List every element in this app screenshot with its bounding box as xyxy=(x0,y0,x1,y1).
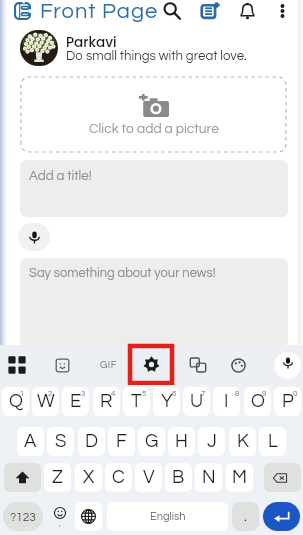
staticText: H xyxy=(175,432,188,451)
button[interactable]: Voice typing xyxy=(274,352,301,379)
button[interactable]: F xyxy=(108,427,135,456)
button[interactable]: E xyxy=(62,387,89,416)
button[interactable]: A xyxy=(17,427,44,456)
button[interactable]: Profile xyxy=(20,30,58,66)
staticText: F xyxy=(116,432,127,451)
staticText: A xyxy=(24,432,37,451)
staticText: 5 xyxy=(142,389,147,397)
button[interactable]: T xyxy=(123,387,150,416)
staticText: Y xyxy=(161,392,173,411)
staticText: 1 xyxy=(20,389,25,397)
staticText: Do small things with great love. xyxy=(66,49,247,63)
button[interactable]: Backspace xyxy=(264,463,301,492)
staticText: Parkavi xyxy=(66,33,117,52)
button[interactable]: Voice input xyxy=(18,223,50,251)
staticText: 0 xyxy=(293,389,298,397)
staticText: Q xyxy=(9,392,23,411)
button[interactable]: O xyxy=(244,387,271,416)
button[interactable]: Shift xyxy=(4,463,41,492)
button[interactable]: K xyxy=(229,427,256,456)
staticText: B xyxy=(172,468,185,487)
staticText: , xyxy=(59,519,61,527)
button[interactable]: More options xyxy=(273,0,292,24)
staticText: Add a title! xyxy=(29,169,92,183)
staticText: E xyxy=(70,392,82,411)
button[interactable]: New post xyxy=(197,0,224,24)
staticText: T xyxy=(131,392,142,411)
staticText: C xyxy=(112,468,125,487)
staticText: U xyxy=(190,392,204,411)
staticText: N xyxy=(202,468,216,487)
button[interactable]: Change language xyxy=(75,502,102,531)
button[interactable]: R xyxy=(93,387,120,416)
button[interactable]: ?123 xyxy=(3,502,43,531)
staticText: 3 xyxy=(81,389,86,397)
staticText: English xyxy=(150,511,186,522)
staticText: X xyxy=(83,468,95,487)
staticText: Click to add a picture xyxy=(89,122,219,136)
staticText: J xyxy=(207,432,217,451)
button[interactable]: Apps xyxy=(0,347,35,383)
staticText: ?123 xyxy=(10,511,36,523)
staticText: 7 xyxy=(201,389,206,397)
button[interactable]: Click to add a picture xyxy=(21,77,286,152)
staticText: 8 xyxy=(235,389,240,397)
staticText: 9 xyxy=(262,389,267,397)
staticText: 4 xyxy=(111,389,116,397)
button[interactable]: G xyxy=(138,427,165,456)
button[interactable]: V xyxy=(135,463,162,492)
button[interactable]: Y xyxy=(153,387,180,416)
button[interactable]: Say something about your news! xyxy=(20,258,288,347)
button[interactable]: Notifications xyxy=(236,0,259,24)
staticText: W xyxy=(37,392,55,411)
button[interactable]: M xyxy=(226,463,253,492)
staticText: Z xyxy=(52,468,63,487)
button[interactable]: English xyxy=(107,502,228,531)
button[interactable]: I xyxy=(213,387,240,416)
button[interactable]: B xyxy=(165,463,192,492)
staticText: S xyxy=(55,432,67,451)
button[interactable]: Q xyxy=(2,387,29,416)
staticText: R xyxy=(100,392,113,411)
button[interactable]: P xyxy=(274,387,301,416)
staticText: 6 xyxy=(172,389,177,397)
button[interactable]: N xyxy=(195,463,222,492)
button[interactable]: S xyxy=(47,427,74,456)
staticText: I xyxy=(224,392,229,411)
staticText: . xyxy=(244,510,247,524)
staticText: 2 xyxy=(48,389,53,397)
button[interactable]: Emoji xyxy=(48,502,71,531)
button[interactable]: Z xyxy=(44,463,71,492)
button[interactable]: Translate xyxy=(180,347,216,383)
staticText: M xyxy=(232,468,247,487)
button[interactable]: D xyxy=(78,427,105,456)
button[interactable]: . xyxy=(232,502,259,531)
staticText: K xyxy=(237,432,249,451)
button[interactable]: Search xyxy=(159,0,185,24)
button[interactable]: GIF xyxy=(97,356,120,374)
staticText: G xyxy=(145,432,159,451)
button[interactable]: W xyxy=(32,387,59,416)
button[interactable]: Add a title! xyxy=(20,160,288,217)
button[interactable]: X xyxy=(75,463,102,492)
staticText: Say something about your news! xyxy=(29,266,216,279)
button[interactable]: U xyxy=(183,387,210,416)
button[interactable]: Enter xyxy=(263,502,300,531)
button[interactable]: Stickers xyxy=(44,347,80,383)
button[interactable]: Themes xyxy=(221,347,257,383)
staticText: P xyxy=(282,392,294,411)
button[interactable]: L xyxy=(259,427,286,456)
staticText: GIF xyxy=(100,360,118,370)
staticText: D xyxy=(85,432,99,451)
staticText: O xyxy=(251,392,265,411)
staticText: V xyxy=(143,468,155,487)
button[interactable]: C xyxy=(105,463,132,492)
button[interactable]: Settings xyxy=(130,346,172,383)
button[interactable]: H xyxy=(168,427,195,456)
staticText: Front Page xyxy=(40,0,159,23)
button[interactable]: J xyxy=(198,427,225,456)
staticText: L xyxy=(268,432,278,451)
